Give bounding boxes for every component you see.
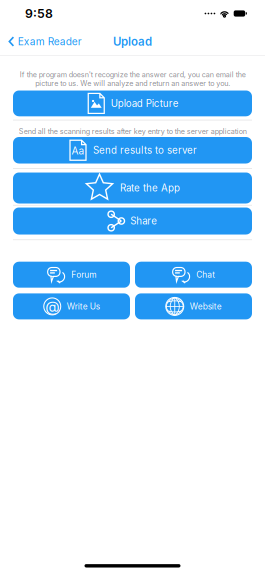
staticText: 9:58 xyxy=(25,6,53,21)
staticText: Rate the App xyxy=(120,182,180,194)
button[interactable]: Share xyxy=(13,207,252,234)
staticText: Forum xyxy=(71,270,96,280)
button[interactable]: Website xyxy=(135,293,252,319)
staticText: Exam Reader xyxy=(18,35,82,48)
button[interactable]: Rate the App xyxy=(13,172,252,203)
staticText: Send all the scanning results after key … xyxy=(18,127,246,136)
staticText: @ xyxy=(45,297,59,315)
staticText: Chat xyxy=(196,270,215,280)
staticText: Upload xyxy=(113,35,152,48)
button[interactable]: Forum xyxy=(13,262,130,288)
staticText: Write Us xyxy=(67,301,100,311)
button[interactable]: @ xyxy=(13,293,130,319)
staticText: Website xyxy=(190,301,222,311)
button[interactable]: Exam Reader xyxy=(0,30,88,53)
button[interactable]: Aa xyxy=(13,137,252,163)
button[interactable]: Upload xyxy=(104,29,161,54)
staticText: Share xyxy=(130,215,157,227)
staticText: If the program doesn't recognize the ans… xyxy=(19,70,245,88)
button[interactable]: Upload Picture xyxy=(13,90,252,116)
button[interactable]: Chat xyxy=(135,262,252,288)
staticText: Aa xyxy=(71,145,84,157)
staticText: Send results to server xyxy=(93,144,197,156)
staticText: Upload Picture xyxy=(111,97,179,109)
